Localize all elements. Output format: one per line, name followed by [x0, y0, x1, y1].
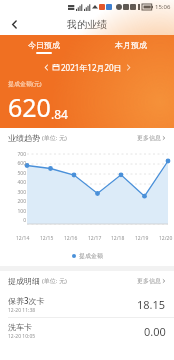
staticText: 我的业绩: [67, 18, 107, 31]
button[interactable]: 2021年12月20日: [0, 59, 174, 75]
staticText: 700: [17, 151, 26, 158]
button[interactable]: 更多信息: [137, 277, 166, 285]
staticText: 15:06: [155, 3, 171, 11]
staticText: 12/18: [111, 235, 125, 242]
staticText: 200: [17, 198, 26, 205]
staticText: 12/20: [159, 235, 173, 242]
staticText: 洗车卡: [8, 322, 32, 332]
staticText: 12/14: [16, 235, 30, 242]
staticText: 12/17: [88, 235, 102, 242]
staticText: 12/19: [135, 235, 149, 242]
button[interactable]: 保养3次卡: [0, 291, 174, 317]
staticText: 业绩趋势: [8, 133, 40, 143]
staticText: 0.00: [144, 324, 166, 339]
button[interactable]: 洗车卡: [0, 318, 174, 344]
staticText: 500: [17, 170, 26, 177]
staticText: (单位: 元): [42, 134, 67, 142]
button[interactable]: 本月预成: [87, 35, 174, 59]
staticText: 今日预成: [28, 40, 60, 50]
staticText: 600: [17, 160, 26, 167]
staticText: 本月预成: [115, 40, 147, 50]
button[interactable]: 更多信息: [137, 134, 166, 142]
staticText: 300: [17, 189, 26, 196]
staticText: 100: [17, 208, 26, 215]
button[interactable]: Back: [6, 16, 22, 32]
staticText: 12-20 10:05: [8, 333, 36, 340]
staticText: 12/15: [40, 235, 54, 242]
staticText: (单位: 元): [42, 277, 67, 285]
button[interactable]: 今日预成: [0, 35, 87, 59]
staticText: 18.15: [137, 297, 166, 312]
staticText: 620: [8, 90, 51, 124]
staticText: 提成金额(元): [8, 80, 42, 88]
staticText: 提成金额: [79, 252, 103, 260]
staticText: .84: [51, 106, 68, 122]
staticText: 12-20 11:38: [8, 307, 36, 314]
staticText: 0: [23, 217, 26, 224]
staticText: 更多信息: [137, 277, 161, 285]
staticText: 400: [17, 179, 26, 186]
staticText: 更多信息: [137, 134, 161, 142]
staticText: 12/16: [64, 235, 78, 242]
staticText: 提成明细: [8, 276, 40, 286]
staticText: 保养3次卡: [8, 295, 45, 306]
staticText: 2021年12月20日: [61, 62, 122, 73]
